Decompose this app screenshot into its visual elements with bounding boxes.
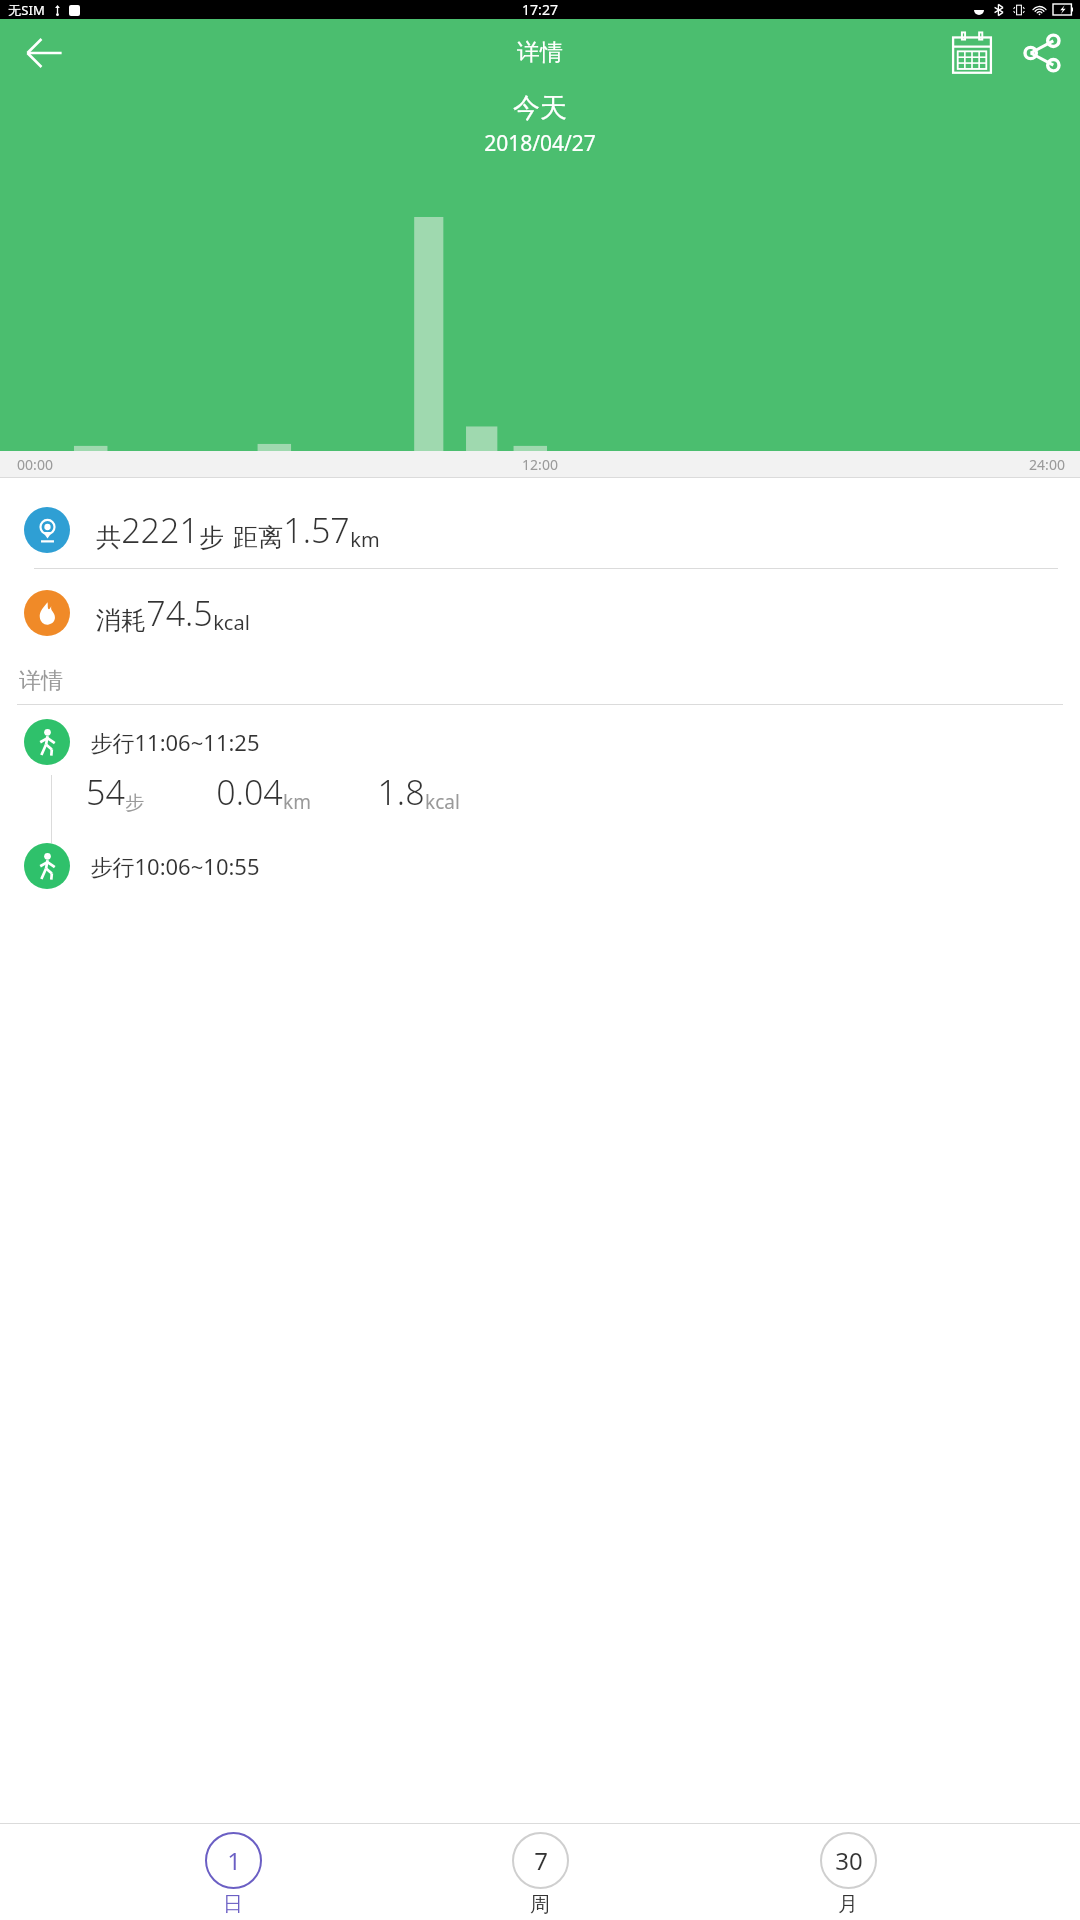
staticText: 1.57	[283, 507, 350, 553]
staticText: 步	[125, 791, 144, 815]
staticText: 00:00	[17, 455, 53, 474]
button[interactable]: Share	[1014, 25, 1070, 81]
staticText: 步行10:06~10:55	[90, 851, 260, 881]
staticText: 24:00	[1029, 455, 1065, 474]
staticText: 日	[223, 1892, 243, 1917]
staticText: 详情	[19, 667, 63, 695]
button[interactable]: 共	[0, 492, 1080, 568]
staticText: kcal	[213, 609, 250, 636]
staticText: 30	[835, 1844, 863, 1877]
staticText: 距离	[233, 522, 283, 553]
button[interactable]: 步行11:06~11:25	[0, 719, 1080, 765]
staticText: 2221	[121, 507, 199, 553]
staticText: 详情	[517, 38, 563, 67]
staticText: 今天	[513, 91, 567, 125]
staticText: 月	[838, 1892, 858, 1917]
staticText: 消耗	[96, 605, 146, 636]
staticText: km	[283, 789, 311, 815]
staticText: 2018/04/27	[484, 129, 596, 158]
staticText: kcal	[425, 789, 460, 815]
staticText: 12:00	[522, 455, 558, 474]
button[interactable]: 消耗	[0, 569, 1080, 657]
staticText: 步行11:06~11:25	[90, 727, 260, 757]
button[interactable]: Calendar	[944, 25, 1000, 81]
staticText: 步	[199, 522, 224, 553]
button[interactable]: 步行10:06~10:55	[0, 843, 1080, 889]
staticText: km	[350, 526, 380, 553]
button[interactable]: 1	[158, 1824, 308, 1917]
button[interactable]: Back	[16, 25, 72, 81]
staticText: 7	[534, 1844, 548, 1877]
staticText: 无SIM	[8, 1, 45, 19]
button[interactable]: 7	[465, 1824, 615, 1917]
button[interactable]: 30	[773, 1824, 923, 1917]
staticText: 共	[96, 522, 121, 553]
staticText: 17:27	[522, 0, 558, 19]
staticText: 1.8	[377, 769, 425, 815]
staticText: 0.04	[216, 769, 283, 815]
staticText: 周	[530, 1892, 550, 1917]
staticText: 1	[227, 1844, 241, 1877]
staticText: 54	[86, 769, 125, 815]
staticText: 74.5	[146, 590, 213, 636]
